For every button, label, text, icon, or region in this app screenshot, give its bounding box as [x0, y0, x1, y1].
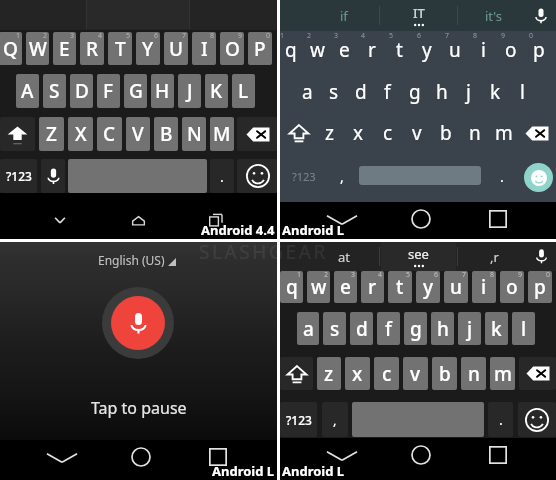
button[interactable]: Shift [0, 117, 35, 151]
button[interactable]: n [460, 116, 489, 150]
button[interactable]: V [126, 117, 150, 151]
button[interactable]: q [277, 33, 304, 67]
button[interactable]: Home [406, 441, 435, 469]
button[interactable]: Delete [518, 116, 556, 150]
button[interactable]: Voice input [41, 159, 65, 193]
button[interactable]: r [361, 271, 384, 303]
button[interactable]: Recents [483, 205, 512, 233]
button[interactable]: e [331, 33, 358, 67]
button[interactable]: Delete [519, 357, 556, 390]
button[interactable]: p [528, 271, 552, 303]
button[interactable]: h [428, 75, 455, 109]
button[interactable]: L [232, 74, 255, 108]
button[interactable]: D [70, 74, 93, 108]
button[interactable]: C [97, 117, 122, 151]
button[interactable]: z [315, 116, 344, 150]
button[interactable]: J [178, 74, 201, 108]
button[interactable]: O [220, 32, 244, 65]
button[interactable]: o [497, 33, 525, 67]
button[interactable]: w [307, 271, 330, 303]
button[interactable]: Home [126, 443, 155, 471]
button[interactable]: B [154, 117, 178, 151]
button[interactable]: a [294, 75, 320, 109]
button[interactable]: c [373, 116, 402, 150]
button[interactable]: j [455, 75, 482, 109]
button[interactable]: x [345, 357, 370, 390]
button[interactable]: Delete [237, 117, 278, 151]
button[interactable]: g [401, 75, 428, 109]
button[interactable]: Emoji [518, 402, 556, 437]
button[interactable]: T [108, 32, 132, 65]
button[interactable]: Recents [200, 206, 232, 234]
button[interactable]: f [374, 75, 401, 109]
button[interactable]: s [320, 75, 347, 109]
button[interactable]: k [482, 75, 509, 109]
button[interactable]: t [388, 271, 412, 303]
button[interactable]: a [297, 312, 319, 345]
button[interactable]: , [322, 402, 348, 437]
button[interactable]: I [192, 32, 216, 65]
button[interactable]: Voice input [526, 242, 556, 271]
button[interactable]: U [164, 32, 188, 65]
button[interactable]: v [402, 116, 431, 150]
button[interactable]: w [304, 33, 331, 67]
button[interactable]: ,r [459, 242, 529, 271]
button[interactable]: . [488, 158, 516, 194]
button[interactable]: IT [381, 0, 456, 31]
button[interactable]: ?123 [0, 159, 37, 193]
button[interactable]: p [525, 33, 553, 67]
button[interactable]: N [182, 117, 206, 151]
button[interactable]: see [381, 242, 456, 271]
button[interactable]: m [490, 357, 515, 390]
button[interactable]: W [26, 32, 49, 65]
button[interactable]: ?123 [280, 402, 317, 437]
button[interactable]: S [43, 74, 66, 108]
button[interactable]: H [151, 74, 174, 108]
button[interactable]: r [358, 33, 385, 67]
button[interactable]: Z [39, 117, 64, 151]
button[interactable]: e [334, 271, 357, 303]
button[interactable]: Back [324, 441, 360, 469]
button[interactable]: m [489, 116, 518, 150]
button[interactable]: j [458, 312, 481, 345]
button[interactable]: M [210, 117, 234, 151]
button[interactable]: Home [406, 205, 435, 233]
button[interactable]: b [431, 116, 460, 150]
button[interactable]: Microphone [102, 287, 174, 359]
button[interactable]: Voice input [526, 0, 556, 31]
button[interactable]: K [205, 74, 228, 108]
button[interactable]: q [280, 271, 303, 303]
button[interactable]: Emoji [237, 159, 278, 193]
button[interactable]: o [500, 271, 524, 303]
button[interactable]: x [344, 116, 373, 150]
button[interactable]: Y [136, 32, 160, 65]
button[interactable]: g [404, 312, 427, 345]
button[interactable]: y [413, 33, 441, 67]
button[interactable]: y [416, 271, 440, 303]
button[interactable]: u [441, 33, 469, 67]
button[interactable]: t [385, 33, 413, 67]
button[interactable]: h [431, 312, 454, 345]
button[interactable]: b [432, 357, 457, 390]
button[interactable]: Q [0, 32, 22, 65]
button[interactable]: , [328, 158, 356, 194]
button[interactable]: v [403, 357, 428, 390]
button[interactable]: . [210, 159, 234, 193]
button[interactable]: G [124, 74, 147, 108]
button[interactable]: A [16, 74, 39, 108]
button[interactable]: Emoji [524, 163, 553, 192]
button[interactable]: Recents [483, 441, 512, 469]
button[interactable]: if [308, 0, 379, 31]
button[interactable]: f [377, 312, 400, 345]
button[interactable]: u [444, 271, 468, 303]
button[interactable]: c [374, 357, 399, 390]
button[interactable]: Shift [280, 116, 318, 150]
button[interactable]: l [509, 75, 536, 109]
button[interactable]: n [461, 357, 486, 390]
button[interactable]: z [317, 357, 341, 390]
button[interactable]: R [80, 32, 104, 65]
